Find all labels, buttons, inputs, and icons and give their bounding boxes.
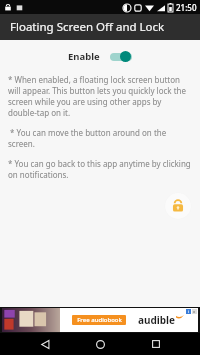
staticText: Floating Screen Off and Lock (10, 19, 165, 35)
staticText: Enable (68, 50, 100, 63)
button[interactable]: Enable (0, 46, 200, 66)
staticText: * When enabled, a floating lock screen b… (8, 74, 192, 118)
button[interactable]: Recent apps (145, 333, 167, 355)
button[interactable]: Back (34, 333, 56, 355)
staticText: audible (138, 313, 176, 327)
staticText: * You can move the button around on the … (8, 127, 192, 149)
staticText: i (188, 309, 190, 314)
staticText: * You can go back to this app anytime by… (8, 158, 192, 180)
button[interactable]: Floating lock screen button (164, 192, 192, 220)
staticText: 21:50 (176, 2, 197, 13)
staticText: x (193, 309, 196, 314)
button[interactable]: Home (89, 333, 111, 355)
staticText: Free audiobook (77, 316, 122, 324)
button[interactable]: Advertisement (0, 307, 200, 333)
